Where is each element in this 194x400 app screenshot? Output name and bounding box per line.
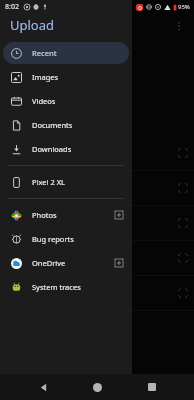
button[interactable]: Home [85, 375, 109, 399]
staticText: 04 [6, 249, 15, 259]
staticText: Documents [32, 120, 123, 130]
staticText: Videos [32, 96, 123, 106]
button[interactable]: OneDrive [3, 252, 129, 274]
staticText: Upload [10, 16, 55, 34]
button[interactable]: 04 [0, 241, 194, 276]
staticText: Images [18, 44, 41, 53]
button[interactable]: 04 [0, 276, 194, 311]
staticText: 04 [6, 284, 15, 294]
staticText: Photos [32, 210, 115, 220]
staticText: 8:02 [5, 2, 19, 12]
button[interactable]: Documents [3, 114, 129, 136]
button[interactable]: 04 [0, 136, 194, 171]
staticText: Bug reports [32, 234, 123, 244]
button[interactable]: Images [4, 40, 50, 56]
staticText: Images [32, 72, 123, 82]
button[interactable]: Recent [3, 42, 129, 64]
button[interactable]: Pixel 2 XL [3, 171, 129, 193]
button[interactable]: Back [31, 375, 55, 399]
button[interactable]: Photos [3, 204, 129, 226]
staticText: System traces [32, 282, 123, 292]
button[interactable]: System traces [3, 276, 129, 298]
staticText: Recent [32, 48, 123, 58]
button[interactable]: Videos [3, 90, 129, 112]
button[interactable]: Bug reports [3, 228, 129, 250]
button[interactable]: Downloads [3, 138, 129, 160]
button[interactable]: Documents [54, 40, 114, 56]
button[interactable]: 04 [0, 171, 194, 206]
staticText: OneDrive [32, 258, 115, 268]
staticText: 95% [178, 3, 190, 11]
button[interactable]: Recents [140, 375, 164, 399]
staticText: 04 [6, 179, 15, 189]
staticText: 04 [6, 144, 15, 154]
staticText: Pixel 2 XL [32, 177, 123, 187]
button[interactable]: Images [3, 66, 129, 88]
button[interactable]: 04 [0, 206, 194, 241]
staticText: system trace [6, 260, 39, 267]
staticText: Downloads [32, 144, 123, 154]
staticText: 04 [6, 214, 15, 224]
button[interactable]: More options [170, 17, 188, 35]
